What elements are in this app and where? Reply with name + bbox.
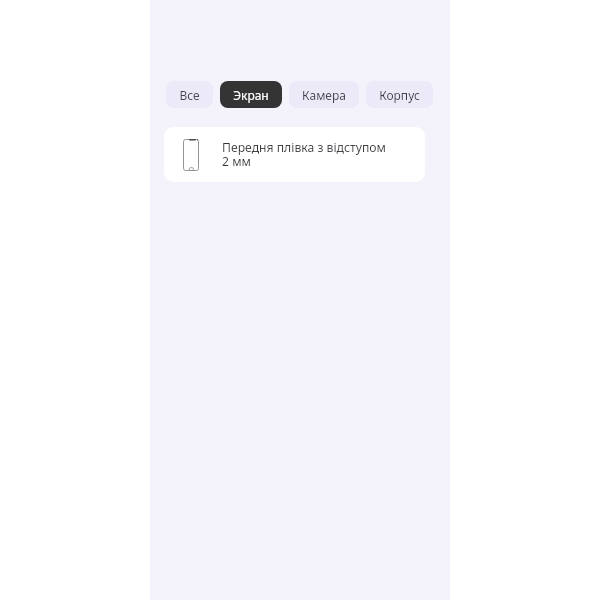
staticText: Камера <box>302 87 346 103</box>
staticText: Передня плівка з відступом 2 мм <box>222 139 390 170</box>
button[interactable]: Экран <box>220 81 282 108</box>
button[interactable]: Все <box>166 81 213 108</box>
staticText: Экран <box>233 87 269 103</box>
button[interactable]: Смартфон <box>164 127 425 182</box>
other: Смартфон <box>183 139 199 171</box>
staticText: Все <box>179 87 200 103</box>
staticText: Корпус <box>379 87 420 103</box>
button[interactable]: Камера <box>289 81 359 108</box>
button[interactable]: Корпус <box>366 81 433 108</box>
